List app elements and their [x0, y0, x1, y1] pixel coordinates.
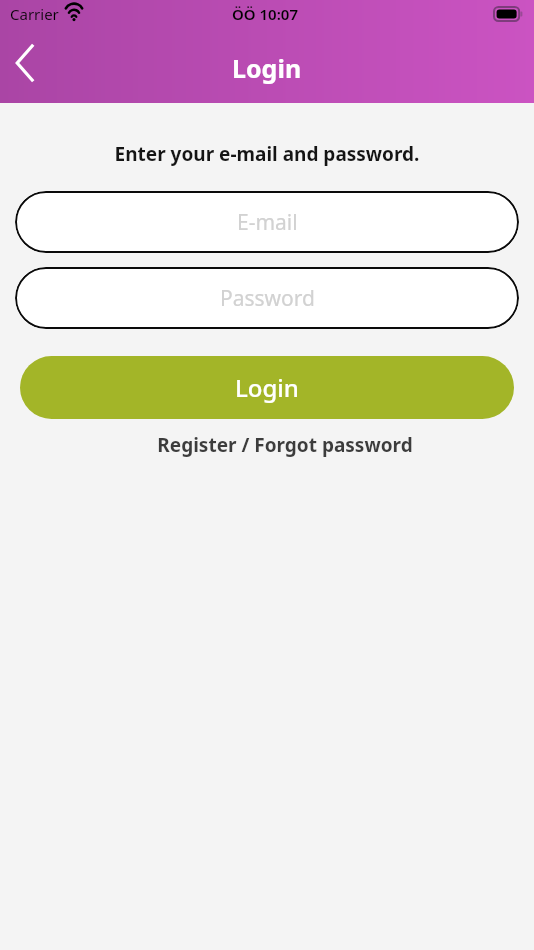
staticText: Register / Forgot password — [157, 432, 413, 458]
button[interactable]: E-mail — [15, 191, 519, 253]
button[interactable]: Back — [0, 36, 52, 90]
staticText: Login — [232, 51, 302, 85]
button[interactable]: Login — [20, 356, 514, 419]
staticText: Enter your e-mail and password. — [0, 141, 534, 167]
staticText: Carrier — [10, 4, 59, 24]
button[interactable]: Register / Forgot password — [80, 430, 454, 460]
button[interactable]: Password — [15, 267, 519, 329]
staticText: Login — [235, 371, 299, 404]
staticText: Password — [220, 284, 315, 313]
staticText: ÖÖ 10:07 — [232, 4, 298, 24]
staticText: E-mail — [237, 208, 298, 237]
